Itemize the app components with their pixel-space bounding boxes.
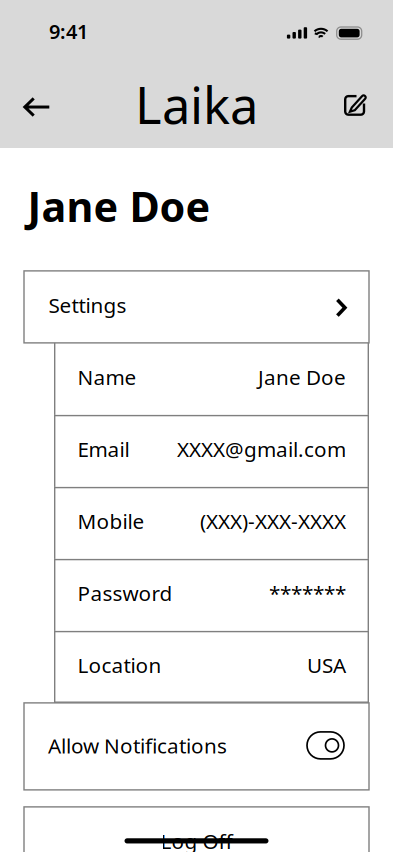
staticText: Mobile: [77, 507, 144, 535]
staticText: Location: [77, 651, 161, 679]
button[interactable]: Settings: [24, 271, 369, 343]
staticText: Laika: [135, 71, 258, 138]
staticText: 9:41: [49, 18, 88, 45]
staticText: Password: [77, 579, 172, 607]
staticText: Settings: [48, 291, 126, 319]
staticText: USA: [307, 651, 346, 679]
staticText: Jane Doe: [258, 363, 346, 391]
staticText: Name: [77, 363, 136, 391]
button[interactable]: Log Off: [24, 807, 369, 852]
staticText: Email: [77, 435, 129, 463]
staticText: XXXX@gmail.com: [177, 435, 346, 463]
staticText: Allow Notifications: [48, 731, 227, 759]
staticText: *******: [269, 579, 346, 607]
button[interactable]: Back: [15, 85, 59, 129]
button[interactable]: Edit: [333, 83, 377, 127]
button[interactable]: Allow Notifications: [24, 703, 369, 790]
staticText: Log Off: [160, 827, 232, 852]
staticText: (XXX)-XXX-XXXX: [200, 507, 346, 535]
staticText: Jane Doe: [27, 179, 210, 233]
